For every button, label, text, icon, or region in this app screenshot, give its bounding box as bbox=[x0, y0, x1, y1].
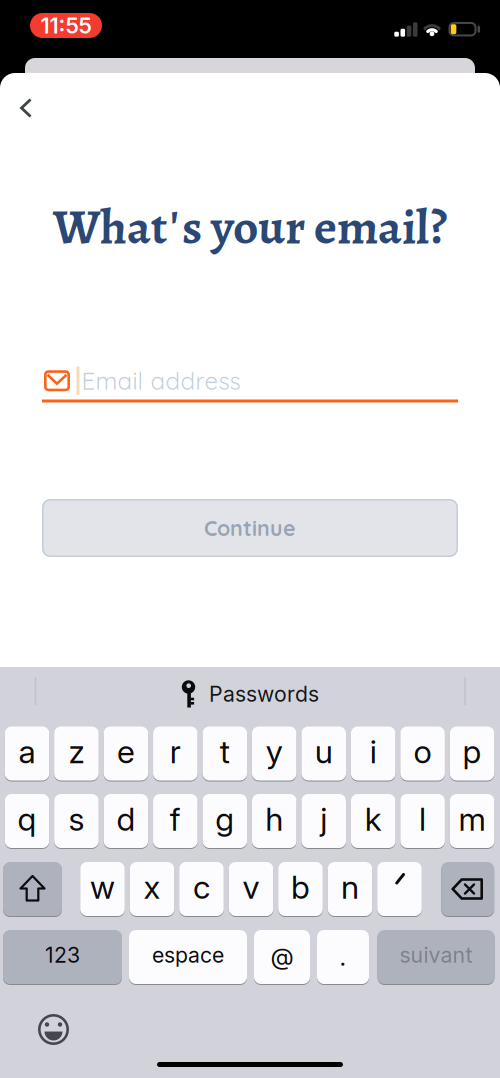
staticText: a bbox=[18, 732, 35, 771]
staticText: x bbox=[143, 868, 160, 906]
staticText: v bbox=[242, 868, 259, 906]
staticText: c bbox=[193, 868, 210, 906]
button[interactable]: x bbox=[130, 862, 174, 916]
staticText: r bbox=[170, 732, 181, 771]
staticText: . bbox=[339, 942, 346, 971]
button[interactable]: a bbox=[5, 726, 49, 780]
button[interactable]: Email address bbox=[42, 361, 458, 407]
button[interactable]: s bbox=[54, 794, 99, 848]
staticText: b bbox=[291, 868, 310, 906]
staticText: f bbox=[170, 800, 181, 838]
staticText: n bbox=[341, 868, 359, 906]
button[interactable]: Continue bbox=[42, 499, 458, 557]
button[interactable]: p bbox=[450, 726, 494, 780]
button[interactable]: 123 bbox=[3, 930, 122, 984]
staticText: e bbox=[117, 732, 135, 771]
staticText: w bbox=[90, 868, 115, 906]
staticText: z bbox=[68, 732, 84, 771]
staticText: l bbox=[419, 800, 426, 838]
button[interactable]: espace bbox=[129, 930, 247, 984]
staticText: s bbox=[68, 800, 84, 838]
button[interactable]: u bbox=[301, 726, 346, 780]
button[interactable]: w bbox=[80, 862, 125, 916]
staticText: 123 bbox=[45, 942, 80, 968]
staticText: p bbox=[463, 732, 482, 771]
button[interactable]: e bbox=[104, 726, 148, 780]
staticText: Passwords bbox=[209, 681, 319, 707]
staticText: d bbox=[116, 800, 135, 838]
button[interactable]: suivant bbox=[377, 930, 494, 984]
button[interactable]: l bbox=[400, 794, 445, 848]
staticText: What ' s your email? bbox=[53, 193, 447, 260]
button[interactable]: y bbox=[252, 726, 296, 780]
staticText: h bbox=[265, 800, 283, 838]
button[interactable]: g bbox=[202, 794, 247, 848]
staticText: suivant bbox=[399, 942, 472, 968]
button[interactable]: i bbox=[351, 726, 395, 780]
staticText: t bbox=[220, 732, 230, 771]
staticText: 11:55 bbox=[40, 12, 91, 39]
button[interactable]: h bbox=[252, 794, 296, 848]
button[interactable]: o bbox=[400, 726, 445, 780]
staticText: y bbox=[266, 732, 283, 771]
button[interactable]: Emoji bbox=[33, 1009, 73, 1049]
staticText: u bbox=[315, 732, 333, 771]
button[interactable]: 11:55 bbox=[30, 13, 102, 38]
staticText: @ bbox=[270, 941, 293, 970]
staticText: q bbox=[17, 800, 36, 838]
staticText: k bbox=[365, 800, 382, 838]
staticText: i bbox=[370, 732, 377, 771]
button[interactable]: . bbox=[317, 930, 369, 984]
button[interactable]: @ bbox=[254, 930, 310, 984]
button[interactable]: z bbox=[54, 726, 99, 780]
button[interactable]: b bbox=[278, 862, 323, 916]
button[interactable]: c bbox=[179, 862, 224, 916]
button[interactable]: k bbox=[351, 794, 395, 848]
button[interactable]: t bbox=[202, 726, 247, 780]
staticText: Continue bbox=[204, 515, 296, 541]
button[interactable]: Shift bbox=[3, 862, 62, 916]
button[interactable]: m bbox=[450, 794, 494, 848]
staticText: j bbox=[320, 800, 327, 838]
button[interactable]: n bbox=[328, 862, 372, 916]
button[interactable]: Back bbox=[6, 88, 46, 128]
staticText: espace bbox=[152, 942, 224, 968]
button[interactable]: f bbox=[153, 794, 198, 848]
button[interactable]: j bbox=[301, 794, 346, 848]
staticText: Email address bbox=[81, 366, 240, 396]
button[interactable]: v bbox=[229, 862, 273, 916]
button[interactable]: q bbox=[5, 794, 49, 848]
staticText: m bbox=[459, 800, 486, 838]
button[interactable]: d bbox=[104, 794, 148, 848]
staticText: o bbox=[414, 732, 432, 771]
button[interactable]: Delete bbox=[441, 862, 494, 916]
button[interactable]: Passwords bbox=[181, 677, 319, 710]
staticText: g bbox=[215, 800, 234, 838]
button[interactable]: r bbox=[153, 726, 198, 780]
button[interactable]: Accent bbox=[377, 862, 422, 916]
